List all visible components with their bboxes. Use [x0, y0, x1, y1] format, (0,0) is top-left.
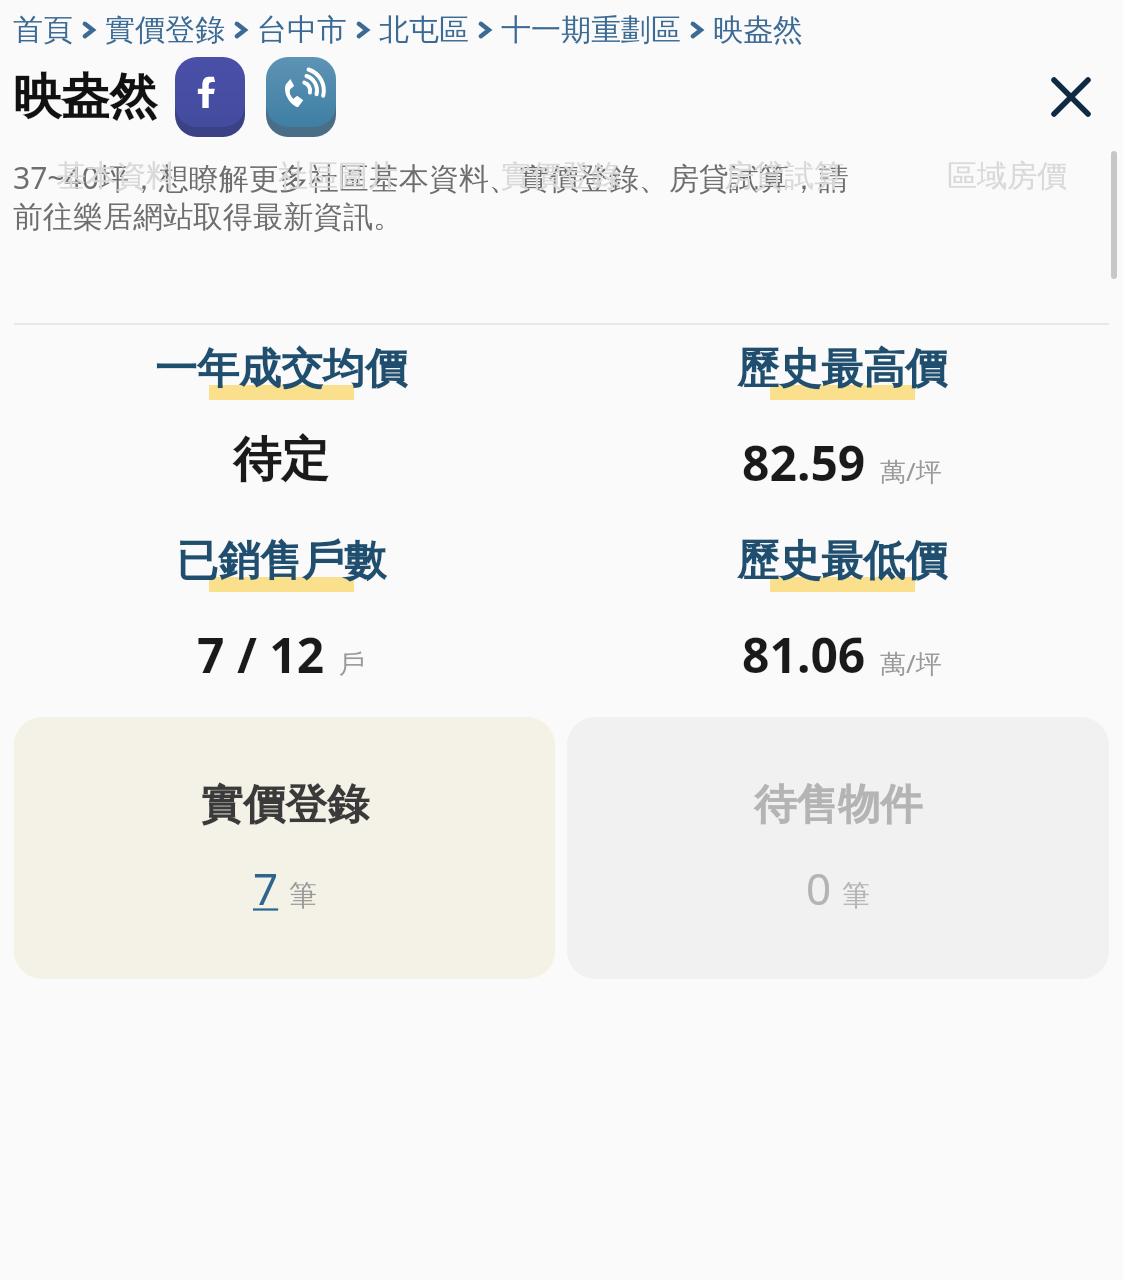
button[interactable]: 歷史最高價	[561, 343, 1123, 495]
staticText: 映盎然	[713, 11, 803, 49]
staticText: 區域房價	[947, 157, 1067, 195]
staticText: 房貸試算	[724, 157, 844, 195]
staticText: 7	[253, 858, 279, 918]
button[interactable]: 首頁	[13, 11, 73, 49]
staticText: 待售物件	[754, 779, 922, 832]
button[interactable]: 台中市	[257, 11, 347, 49]
staticText: 0	[806, 858, 832, 918]
staticText: 萬/坪	[880, 645, 942, 681]
button[interactable]: 房貸試算	[677, 150, 890, 202]
staticText: 一年成交均價	[155, 343, 407, 396]
button[interactable]: 北屯區	[379, 11, 469, 49]
staticText: 戶	[339, 648, 365, 681]
staticText: 實價登錄	[201, 779, 369, 832]
button[interactable]: 待售物件	[567, 717, 1109, 979]
button[interactable]: 區域房價	[900, 150, 1113, 202]
staticText: 已銷售戶數	[176, 535, 386, 588]
staticText: 台中市	[257, 11, 347, 49]
staticText: 前往樂居網站取得最新資訊。	[13, 198, 403, 236]
button[interactable]: 實價登錄	[14, 717, 555, 979]
button[interactable]: 一年成交均價	[0, 343, 561, 490]
button[interactable]: 實價登錄	[454, 150, 667, 202]
staticText: 37~40坪，想瞭解更多社區基本資料、實價登錄、房貸試算，請	[13, 157, 849, 198]
button[interactable]: 社區圖片	[232, 150, 444, 202]
staticText: 81.06	[742, 622, 866, 687]
staticText: 實價登錄	[105, 11, 225, 49]
staticText: 十一期重劃區	[501, 11, 681, 49]
button[interactable]: 已銷售戶數	[0, 535, 561, 687]
button[interactable]: 十一期重劃區	[501, 11, 681, 49]
staticText: 基本資料	[56, 157, 176, 195]
button[interactable]: 實價登錄	[105, 11, 225, 49]
staticText: 社區圖片	[278, 157, 398, 195]
button[interactable]: Close	[1043, 69, 1099, 125]
staticText: 歷史最高價	[737, 343, 947, 396]
staticText: 筆	[289, 878, 317, 913]
button[interactable]: Call	[265, 57, 337, 137]
staticText: 歷史最低價	[737, 535, 947, 588]
button[interactable]: 歷史最低價	[561, 535, 1123, 687]
staticText: 82.59	[742, 430, 866, 495]
staticText: 萬/坪	[880, 453, 942, 489]
staticText: 筆	[842, 878, 870, 913]
staticText: 映盎然	[13, 67, 157, 127]
staticText: 北屯區	[379, 11, 469, 49]
staticText: 待定	[233, 430, 329, 490]
staticText: 首頁	[13, 11, 73, 49]
button[interactable]: Facebook	[174, 57, 246, 137]
staticText: 實價登錄	[501, 157, 621, 195]
staticText: 7 / 12	[197, 622, 325, 687]
button[interactable]: 基本資料	[10, 150, 222, 202]
button[interactable]: 映盎然	[713, 11, 803, 49]
